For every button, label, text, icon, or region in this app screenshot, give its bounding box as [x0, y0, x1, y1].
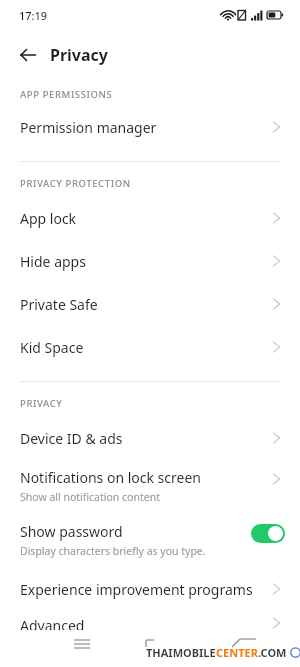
staticText: Experience improvement programs [20, 580, 253, 599]
staticText: Kid Space [20, 338, 84, 357]
staticText: Privacy [50, 44, 108, 66]
staticText: 17:19 [19, 8, 48, 23]
button[interactable]: Back [10, 38, 46, 72]
staticText: Show all notification content [20, 490, 160, 504]
staticText: PRIVACY PROTECTION [20, 177, 131, 190]
button[interactable]: Show password [0, 517, 300, 563]
staticText: Show password [20, 522, 123, 541]
staticText: Permission manager [20, 118, 157, 137]
button[interactable]: Device ID & ads [0, 417, 300, 459]
staticText: App lock [20, 209, 77, 228]
staticText: Display characters briefly as you type. [20, 544, 206, 558]
button[interactable]: Show password toggle [251, 524, 285, 543]
button[interactable]: Advanced [0, 614, 300, 628]
staticText: CENTER [216, 645, 258, 660]
staticText: THAIMOBILE [146, 645, 216, 660]
staticText: PRIVACY [20, 397, 63, 410]
button[interactable]: Permission manager [0, 106, 300, 148]
button[interactable]: Private Safe [0, 283, 300, 325]
staticText: Hide apps [20, 252, 86, 271]
staticText: Advanced [20, 616, 85, 630]
button[interactable]: Kid Space [0, 326, 300, 368]
staticText: APP PERMISSIONS [20, 88, 113, 101]
staticText: .COM [258, 645, 287, 660]
button[interactable]: Recent apps [64, 626, 100, 662]
button[interactable]: Hide apps [0, 240, 300, 282]
button[interactable]: Notifications on lock screen [0, 463, 300, 509]
button[interactable]: Experience improvement programs [0, 568, 300, 610]
staticText: Private Safe [20, 295, 98, 314]
button[interactable]: App lock [0, 197, 300, 239]
staticText: Notifications on lock screen [20, 468, 201, 487]
staticText: Device ID & ads [20, 429, 123, 448]
